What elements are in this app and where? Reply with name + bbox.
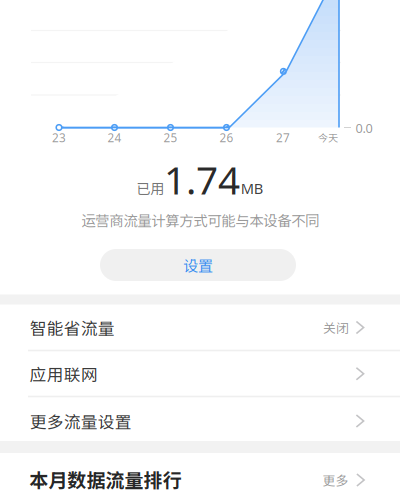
staticText: 23 xyxy=(52,130,66,146)
button[interactable]: 应用联网 xyxy=(0,351,400,396)
staticText: 运营商流量计算方式可能与本设备不同 xyxy=(81,209,319,230)
staticText: 25 xyxy=(163,130,177,146)
staticText: 本月数据流量排行 xyxy=(29,465,181,493)
staticText: 应用联网 xyxy=(30,362,98,386)
button[interactable]: 更多 xyxy=(322,471,367,489)
staticText: 27 xyxy=(276,130,290,146)
button[interactable]: 设置 xyxy=(100,249,296,281)
staticText: 更多 xyxy=(322,471,348,489)
staticText: 1.74 xyxy=(164,153,240,206)
button[interactable]: 智能省流量 xyxy=(0,304,400,350)
staticText: 关闭 xyxy=(323,318,349,337)
staticText: 设置 xyxy=(183,254,213,276)
staticText: 0.0 xyxy=(355,119,372,137)
staticText: 26 xyxy=(219,130,233,146)
staticText: 已用 xyxy=(136,178,164,198)
staticText: 智能省流量 xyxy=(30,315,115,339)
staticText: 更多流量设置 xyxy=(30,409,132,433)
staticText: 今天 xyxy=(318,130,338,145)
staticText: MB xyxy=(241,178,264,198)
staticText: 24 xyxy=(107,130,121,146)
button[interactable]: 更多流量设置 xyxy=(0,399,400,443)
